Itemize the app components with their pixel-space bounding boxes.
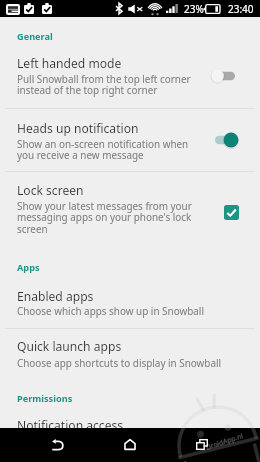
- staticText: General: [17, 30, 53, 43]
- staticText: Choose which apps show up in Snowball: [17, 304, 204, 317]
- staticText: DroidApp.nl: [205, 431, 244, 452]
- button[interactable]: Checkbox: [217, 198, 246, 227]
- staticText: Quick launch apps: [17, 338, 122, 354]
- button[interactable]: [0, 109, 260, 171]
- button[interactable]: [0, 329, 260, 375]
- staticText: 23%: [184, 2, 204, 16]
- staticText: Pull Snowball from the top left corner i…: [17, 72, 191, 97]
- button[interactable]: Toggle off: [205, 59, 247, 93]
- staticText: Enabled apps: [17, 288, 94, 304]
- button[interactable]: Back: [34, 427, 82, 461]
- button[interactable]: [0, 411, 260, 428]
- button[interactable]: Toggle on: [205, 123, 247, 157]
- button[interactable]: [0, 281, 260, 327]
- staticText: Choose app shortcuts to display in Snowb…: [17, 356, 222, 369]
- staticText: Notification access: [17, 417, 124, 433]
- button[interactable]: [0, 172, 260, 244]
- staticText: Lock screen: [17, 182, 84, 198]
- staticText: Heads up notification: [17, 120, 139, 136]
- staticText: Apps: [17, 261, 40, 274]
- staticText: 23:40: [228, 2, 254, 16]
- staticText: Permissions: [17, 392, 73, 405]
- button[interactable]: Home: [106, 427, 154, 461]
- staticText: Show your latest messages from your mess…: [17, 199, 192, 236]
- button[interactable]: [0, 46, 260, 108]
- staticText: Show an on-screen notification when you …: [17, 137, 189, 162]
- button[interactable]: Recent apps: [178, 427, 226, 461]
- staticText: Left handed mode: [17, 55, 122, 71]
